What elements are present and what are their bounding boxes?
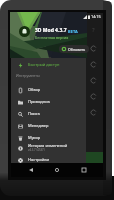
button[interactable]: Back xyxy=(24,163,38,177)
button[interactable]: Recents xyxy=(77,163,91,177)
staticText: Обновить xyxy=(68,47,86,52)
button[interactable]: Refresh xyxy=(89,92,97,100)
button[interactable]: Менеджер xyxy=(11,120,86,131)
staticText: Мусор xyxy=(28,135,41,140)
button[interactable]: Refresh xyxy=(89,76,97,84)
button[interactable]: Поиск xyxy=(11,108,86,119)
staticText: Обзор xyxy=(28,87,41,92)
button[interactable]: Обновить xyxy=(59,45,89,53)
staticText: v4.3.7 (4537) xyxy=(28,148,45,152)
button[interactable]: Home xyxy=(50,163,64,177)
staticText: Инструменты xyxy=(16,73,40,78)
staticText: Проводник xyxy=(28,99,50,104)
button[interactable]: История изменений xyxy=(11,141,86,154)
staticText: ? xyxy=(92,26,95,34)
staticText: История изменений xyxy=(28,143,68,148)
button[interactable]: Обзор xyxy=(11,84,86,95)
staticText: Настройки xyxy=(28,157,49,162)
staticText: 14:15 xyxy=(91,14,101,19)
staticText: BETA xyxy=(68,29,78,34)
staticText: 3D Mod 4.3.7 xyxy=(35,27,67,34)
staticText: Бесплатная версия xyxy=(35,35,69,40)
button[interactable]: Проводник xyxy=(11,96,86,107)
staticText: Менеджер xyxy=(28,123,49,128)
button[interactable]: Refresh xyxy=(89,60,97,68)
button[interactable]: Настройки xyxy=(11,154,86,165)
button[interactable]: Быстрый доступ xyxy=(11,59,86,70)
button[interactable]: Refresh xyxy=(89,108,97,116)
button[interactable]: Мусор xyxy=(11,132,86,143)
staticText: Поиск xyxy=(28,111,40,116)
staticText: Быстрый доступ xyxy=(28,62,60,67)
button[interactable]: Help xyxy=(89,26,97,34)
button[interactable]: Refresh xyxy=(89,44,97,52)
